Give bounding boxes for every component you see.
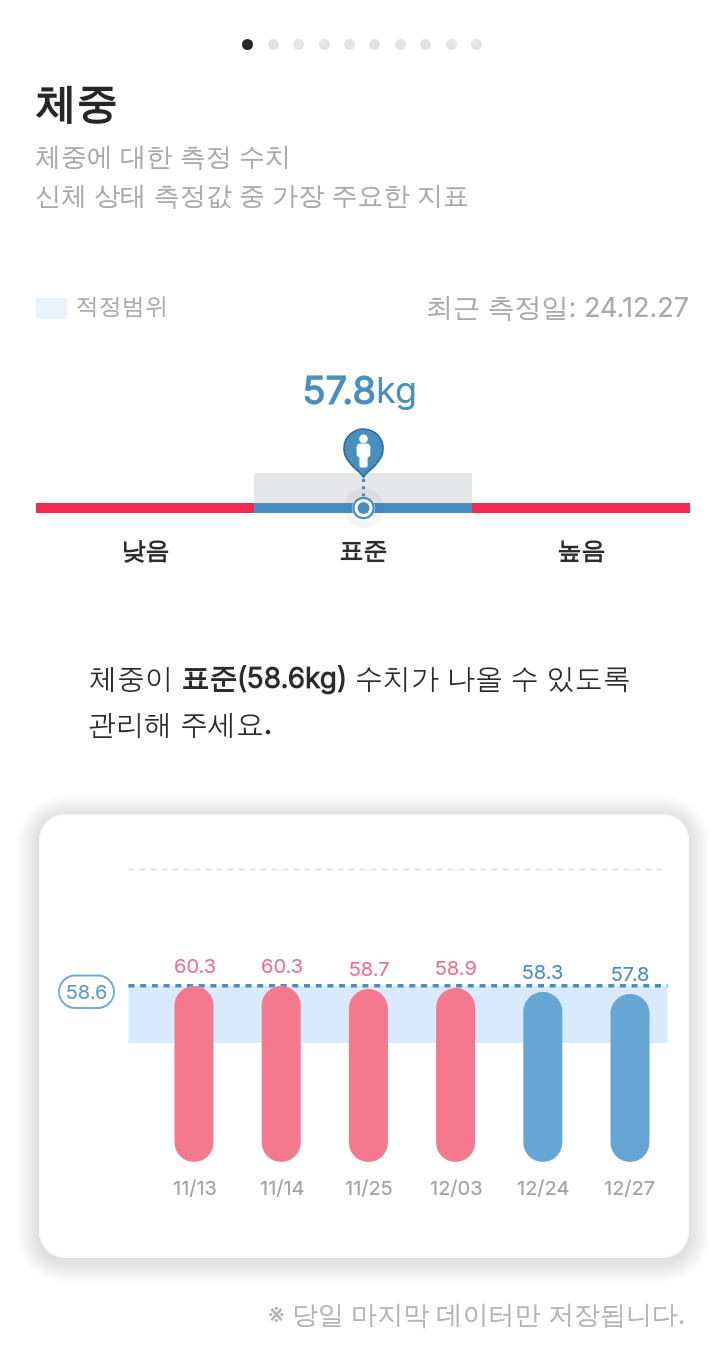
button[interactable]: Page 3	[288, 34, 309, 55]
button[interactable]: Page 5	[339, 34, 360, 55]
staticText: 12/03	[430, 1176, 483, 1200]
staticText: 11/14	[260, 1176, 305, 1200]
button[interactable]: Page 1	[237, 34, 258, 55]
staticText: 표준	[339, 536, 387, 566]
staticText: 58.7	[349, 957, 390, 981]
staticText: 높음	[557, 536, 605, 566]
staticText: ※ 당일 마지막 데이터만 저장됩니다.	[268, 1299, 686, 1332]
button[interactable]: Page 8	[415, 34, 436, 55]
button[interactable]: Page 6	[364, 34, 385, 55]
button[interactable]: Weight history chart	[39, 814, 689, 1258]
staticText: 적정범위	[76, 292, 168, 321]
staticText: 57.8	[303, 367, 376, 413]
staticText: 체중	[35, 79, 117, 131]
button[interactable]: Page 2	[263, 34, 284, 55]
staticText: 체중에 대한 측정 수치	[35, 141, 291, 174]
staticText: 11/25	[345, 1176, 393, 1200]
staticText: 60.3	[174, 954, 217, 978]
staticText: 최근 측정일: 24.12.27	[426, 291, 689, 325]
button[interactable]: Page 4	[314, 34, 335, 55]
staticText: 체중이 표준(58.6kg) 수치가 나올 수 있도록	[89, 661, 631, 696]
staticText: 57.8	[611, 962, 650, 986]
staticText: 58.3	[522, 960, 564, 984]
staticText: kg	[376, 368, 418, 412]
staticText: 58.6	[66, 980, 108, 1004]
staticText: 낮음	[121, 536, 169, 566]
staticText: 11/13	[173, 1176, 217, 1200]
staticText: 신체 상태 측정값 중 가장 주요한 지표	[35, 180, 469, 213]
button[interactable]: Page 10	[466, 34, 487, 55]
button[interactable]: Page 7	[390, 34, 411, 55]
staticText: 12/27	[604, 1176, 656, 1200]
staticText: 60.3	[261, 954, 304, 978]
button[interactable]: Page 9	[441, 34, 462, 55]
staticText: 58.9	[435, 956, 477, 980]
staticText: 12/24	[517, 1176, 570, 1200]
staticText: 관리해 주세요.	[88, 707, 272, 742]
